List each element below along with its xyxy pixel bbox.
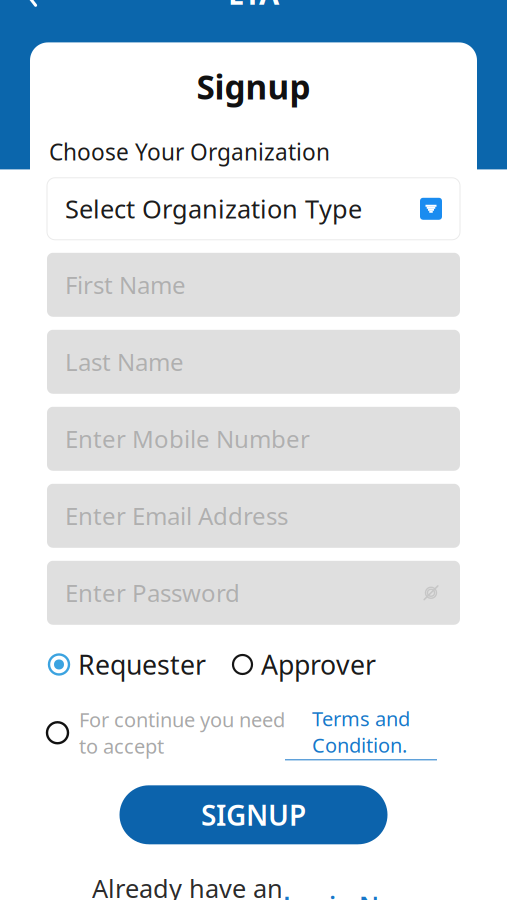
staticText: Enter Password (65, 577, 240, 609)
button[interactable]: Back (8, 0, 54, 16)
staticText: Terms and Condition. (312, 705, 410, 758)
button[interactable]: SIGNUP (119, 785, 387, 844)
staticText: Requester (78, 647, 206, 682)
button[interactable]: Approver (233, 647, 376, 682)
staticText: Enter Email Address (65, 500, 288, 532)
staticText: First Name (65, 269, 186, 301)
button[interactable]: Accept terms and conditions (47, 722, 79, 743)
staticText: Choose Your Organization (49, 137, 330, 167)
button[interactable]: Requester (49, 647, 206, 682)
staticText: Signup (196, 64, 310, 109)
button[interactable]: Select Organization Type (47, 178, 460, 240)
staticText: SIGNUP (201, 796, 306, 833)
button[interactable]: Already have an account ? (92, 871, 415, 900)
staticText: ETA (228, 0, 279, 13)
staticText: Already have an account ? (92, 871, 283, 900)
staticText: Approver (261, 647, 376, 682)
staticText: For continue you need to accept (79, 706, 285, 759)
staticText: Enter Mobile Number (65, 423, 310, 455)
button[interactable]: Terms and Condition. (285, 705, 437, 760)
staticText: Login Now (283, 888, 415, 900)
staticText: Last Name (65, 346, 184, 378)
staticText: Select Organization Type (65, 192, 362, 226)
